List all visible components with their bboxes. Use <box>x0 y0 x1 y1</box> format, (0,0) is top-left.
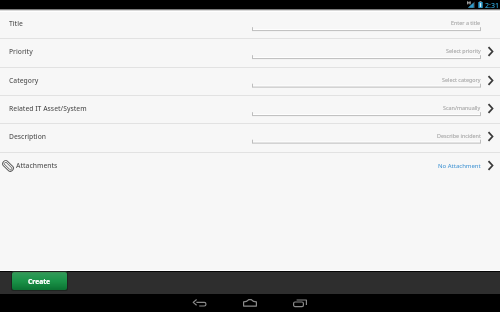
button[interactable]: Title <box>0 11 500 38</box>
button[interactable]: Related IT Asset/System <box>482 95 500 124</box>
button[interactable]: Description <box>0 123 500 151</box>
button[interactable]: Description <box>482 123 500 151</box>
staticText: Related IT Asset/System <box>9 104 87 113</box>
staticText: Attachments <box>16 161 58 170</box>
button[interactable]: Related IT Asset/System <box>0 95 500 124</box>
button[interactable]: Category <box>482 67 500 95</box>
staticText: Select priority <box>446 47 481 54</box>
staticText: Scan/manually <box>443 104 481 111</box>
staticText: Priority <box>9 47 33 56</box>
staticText: No Attachment <box>438 162 481 170</box>
button[interactable]: Attachments <box>482 152 500 181</box>
staticText: Description <box>9 132 47 141</box>
button[interactable]: Attachments <box>0 152 500 181</box>
button[interactable]: Back <box>175 294 225 312</box>
staticText: Select category <box>442 76 481 83</box>
button[interactable]: Priority <box>0 38 500 67</box>
button[interactable]: Recent apps <box>275 294 325 312</box>
staticText: Title <box>9 19 23 28</box>
staticText: 2:31 <box>485 1 499 10</box>
button[interactable]: Priority <box>482 38 500 67</box>
button[interactable]: Category <box>0 67 500 95</box>
staticText: Create <box>28 277 51 286</box>
button[interactable]: Home <box>225 294 275 312</box>
staticText: Describe incident <box>437 132 481 139</box>
button[interactable]: Create <box>12 272 67 290</box>
staticText: Category <box>9 76 39 85</box>
staticText: Enter a title <box>451 19 481 26</box>
